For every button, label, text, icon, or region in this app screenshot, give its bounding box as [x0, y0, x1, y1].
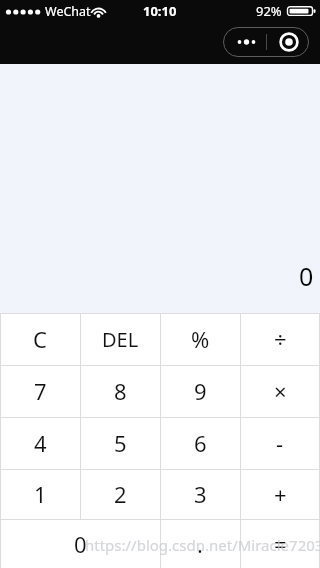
staticText: 3: [194, 479, 207, 509]
button[interactable]: 6: [160, 417, 240, 469]
button[interactable]: ×: [240, 365, 320, 417]
button[interactable]: 9: [160, 365, 240, 417]
button[interactable]: C: [0, 313, 80, 365]
button[interactable]: %: [160, 313, 240, 365]
button[interactable]: 0: [0, 519, 160, 568]
staticText: 9: [194, 376, 207, 406]
staticText: 6: [194, 428, 207, 458]
staticText: 8: [114, 376, 127, 406]
button[interactable]: 2: [80, 469, 160, 519]
button[interactable]: ÷: [240, 313, 320, 365]
staticText: ×: [274, 376, 287, 406]
staticText: 0: [74, 529, 87, 559]
staticText: 1: [34, 479, 47, 509]
button[interactable]: 4: [0, 417, 80, 469]
staticText: https://blog.csdn.net/Miracle7203: [85, 535, 320, 555]
button[interactable]: =: [240, 519, 320, 568]
staticText: WeChat: [45, 3, 91, 20]
staticText: 5: [114, 428, 127, 458]
staticText: -: [276, 428, 284, 458]
staticText: 4: [34, 428, 47, 458]
staticText: =: [274, 529, 287, 559]
button[interactable]: 1: [0, 469, 80, 519]
staticText: .: [197, 529, 203, 559]
button[interactable]: 3: [160, 469, 240, 519]
staticText: C: [33, 324, 47, 354]
staticText: %: [191, 324, 210, 354]
staticText: 2: [114, 479, 127, 509]
staticText: DEL: [102, 326, 139, 353]
button[interactable]: DEL: [80, 313, 160, 365]
button[interactable]: .: [160, 519, 240, 568]
button[interactable]: +: [240, 469, 320, 519]
staticText: 0: [299, 259, 314, 293]
button[interactable]: 7: [0, 365, 80, 417]
staticText: +: [274, 479, 287, 509]
staticText: 92%: [256, 2, 282, 20]
button[interactable]: -: [240, 417, 320, 469]
button[interactable]: 5: [80, 417, 160, 469]
staticText: ÷: [274, 324, 287, 354]
staticText: 10:10: [143, 2, 177, 20]
button[interactable]: 8: [80, 365, 160, 417]
staticText: 7: [34, 376, 47, 406]
button[interactable]: [223, 27, 309, 57]
